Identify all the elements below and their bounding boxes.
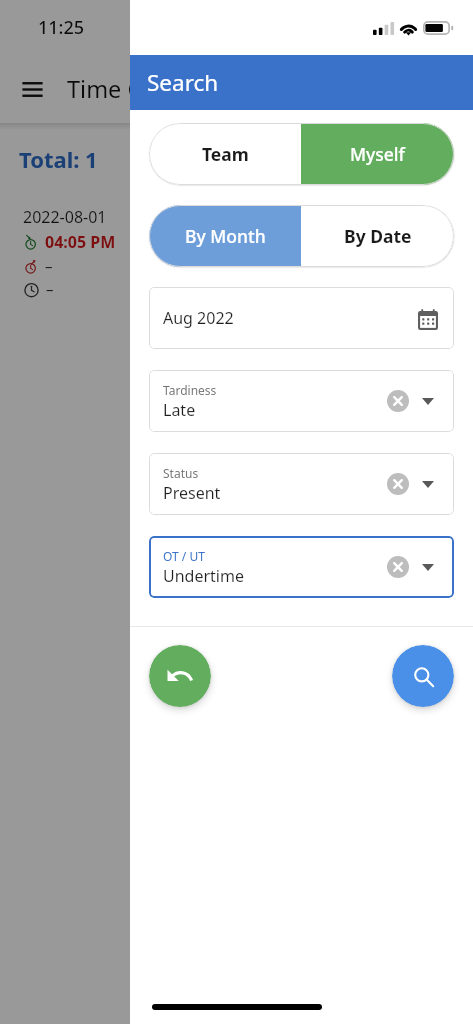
staticText: –: [45, 256, 53, 276]
staticText: By Month: [185, 224, 266, 248]
staticText: Team: [202, 142, 249, 166]
staticText: Present: [163, 482, 221, 504]
button[interactable]: Open Status options: [417, 473, 439, 495]
button[interactable]: Search: [392, 645, 454, 707]
button[interactable]: Clear Tardiness: [385, 388, 411, 414]
staticText: Status: [163, 465, 199, 481]
staticText: Late: [163, 399, 196, 421]
button[interactable]: Myself: [301, 123, 454, 185]
staticText: Tardiness: [163, 382, 217, 398]
staticText: –: [46, 279, 54, 299]
button[interactable]: By Date: [301, 205, 454, 267]
button[interactable]: Reset filters: [149, 645, 211, 707]
staticText: 2022-08-01: [23, 206, 107, 228]
staticText: By Date: [344, 224, 412, 248]
button[interactable]: By Month: [149, 205, 301, 267]
button[interactable]: OT / UT: [149, 536, 454, 598]
button[interactable]: Team: [149, 123, 301, 185]
staticText: Search: [147, 67, 219, 98]
staticText: 04:05 PM: [45, 231, 116, 253]
button[interactable]: Status: [149, 453, 454, 515]
staticText: Myself: [350, 142, 405, 166]
staticText: OT / UT: [163, 548, 205, 564]
button[interactable]: Open Tardiness options: [417, 390, 439, 412]
button[interactable]: Open navigation drawer: [13, 70, 52, 109]
staticText: Undertime: [163, 565, 244, 587]
staticText: Aug 2022: [163, 307, 234, 329]
staticText: Total: 1: [19, 144, 98, 174]
button[interactable]: Aug 2022: [149, 287, 454, 349]
button[interactable]: Clear OT / UT: [385, 554, 411, 580]
button[interactable]: Open OT / UT options: [417, 556, 439, 578]
button[interactable]: Tardiness: [149, 370, 454, 432]
button[interactable]: 2022-08-01: [10, 204, 463, 314]
staticText: 11:25: [38, 15, 85, 40]
staticText: Time Card: [67, 73, 180, 105]
button[interactable]: Clear Status: [385, 471, 411, 497]
